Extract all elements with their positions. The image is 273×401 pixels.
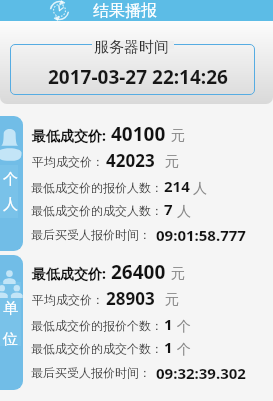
staticText: 40100 — [111, 121, 166, 147]
button[interactable]: 个人 — [0, 116, 23, 251]
staticText: 最低成交价: — [32, 264, 106, 283]
button[interactable]: Refresh — [49, 0, 70, 21]
staticText: 最低成交价: — [32, 126, 106, 145]
staticText: 服务器时间 — [94, 38, 169, 57]
staticText: 最后买受人报价时间： — [31, 227, 151, 242]
staticText: 1 — [164, 314, 173, 334]
staticText: 最低成交价的成交人数： — [31, 203, 163, 218]
staticText: 7 — [164, 199, 173, 219]
staticText: 214 — [164, 176, 190, 196]
button[interactable]: 单位 — [0, 255, 23, 390]
staticText: 个 — [177, 341, 191, 359]
staticText: 位 — [3, 330, 18, 349]
staticText: 平均成交价： — [32, 292, 104, 307]
staticText: 09:01:58.777 — [156, 225, 246, 245]
staticText: 最低成交价的报价个数： — [31, 318, 163, 333]
staticText: 28903 — [106, 287, 155, 310]
staticText: 人 — [177, 203, 191, 221]
staticText: 元 — [171, 127, 185, 145]
staticText: 结果播报 — [93, 1, 157, 21]
staticText: 元 — [165, 291, 179, 309]
staticText: 最低成交价的成交个数： — [31, 341, 163, 356]
staticText: 26400 — [111, 259, 166, 285]
staticText: 元 — [165, 153, 179, 171]
staticText: 人 — [3, 195, 18, 214]
staticText: 单 — [3, 299, 18, 318]
staticText: 个 — [3, 170, 18, 189]
staticText: 元 — [171, 265, 185, 283]
staticText: 42023 — [106, 149, 155, 172]
staticText: 个 — [177, 318, 191, 336]
staticText: 最后买受人报价时间： — [31, 365, 151, 380]
staticText: 平均成交价： — [32, 154, 104, 169]
staticText: 1 — [164, 337, 173, 357]
staticText: 最低成交价的报价人数： — [31, 180, 163, 195]
staticText: 2017-03-27 22:14:26 — [48, 64, 228, 90]
staticText: 09:32:39.302 — [156, 363, 246, 383]
staticText: 人 — [193, 180, 207, 198]
